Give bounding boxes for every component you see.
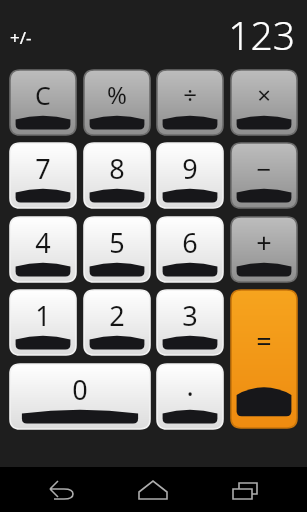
button[interactable]: Clear [10, 70, 76, 135]
staticText: 7 [10, 150, 76, 215]
button[interactable]: Multiply [231, 70, 297, 135]
staticText: 2 [84, 297, 150, 362]
button[interactable]: 2 [84, 290, 150, 355]
staticText: % [84, 78, 150, 143]
staticText: + [231, 224, 297, 289]
button[interactable]: 8 [84, 143, 150, 208]
button[interactable]: Percent [84, 70, 150, 135]
staticText: 0 [10, 371, 150, 436]
staticText: × [231, 78, 297, 143]
staticText: 6 [157, 224, 223, 289]
button[interactable]: Decimal point [157, 364, 223, 429]
staticText: . [157, 367, 223, 432]
staticText: +/- [10, 26, 32, 49]
button[interactable]: 4 [10, 217, 76, 282]
staticText: − [231, 151, 297, 216]
button[interactable]: 9 [157, 143, 223, 208]
staticText: C [10, 78, 76, 143]
staticText: 9 [157, 150, 223, 215]
button[interactable]: Equals [231, 290, 297, 428]
button[interactable]: Minus [231, 143, 297, 208]
button[interactable]: Home [130, 474, 176, 508]
button[interactable]: 3 [157, 290, 223, 355]
button[interactable]: Recent apps [222, 474, 268, 508]
button[interactable]: Toggle sign plus minus [6, 24, 52, 50]
button[interactable]: 6 [157, 217, 223, 282]
staticText: 123 [0, 8, 295, 61]
button[interactable]: 0 [10, 364, 150, 429]
button[interactable]: Plus [231, 217, 297, 282]
button[interactable]: Divide [157, 70, 223, 135]
button[interactable]: Back [38, 474, 84, 508]
staticText: 1 [10, 297, 76, 362]
button[interactable]: 7 [10, 143, 76, 208]
staticText: 4 [10, 224, 76, 289]
button[interactable]: 1 [10, 290, 76, 355]
staticText: = [231, 322, 297, 460]
staticText: 3 [157, 297, 223, 362]
button[interactable]: 5 [84, 217, 150, 282]
staticText: 5 [84, 224, 150, 289]
staticText: ÷ [157, 78, 223, 143]
staticText: 8 [84, 150, 150, 215]
